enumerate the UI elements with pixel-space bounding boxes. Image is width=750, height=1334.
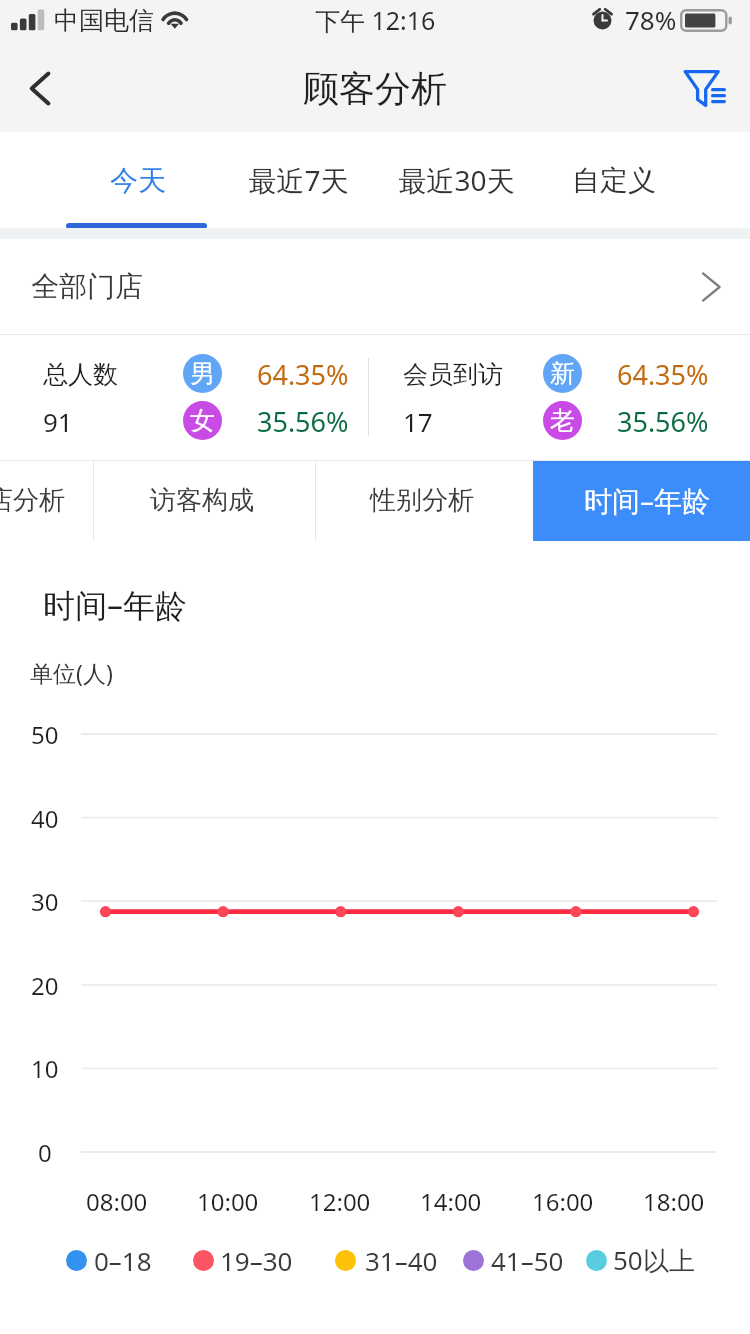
staticText: 时间–年龄	[43, 583, 188, 627]
button[interactable]: 性别分析	[315, 461, 533, 541]
staticText: 10:00	[197, 1185, 259, 1218]
button[interactable]: 最近7天	[218, 132, 378, 228]
staticText: 30	[31, 885, 59, 918]
staticText: 新	[550, 358, 575, 389]
staticText: 20	[31, 969, 59, 1002]
staticText: 10	[31, 1052, 59, 1085]
staticText: 访客构成	[150, 484, 254, 517]
staticText: 64.35%	[617, 356, 709, 393]
staticText: 今天	[110, 163, 166, 198]
staticText: 全部门店	[31, 269, 143, 304]
staticText: 时间–年龄	[584, 481, 711, 519]
staticText: 0–18	[94, 1243, 152, 1278]
staticText: 64.35%	[257, 356, 349, 393]
button[interactable]: Back	[0, 45, 86, 132]
staticText: 老	[550, 405, 575, 436]
staticText: 40	[31, 802, 59, 835]
button[interactable]: Filter	[664, 45, 750, 132]
staticText: 门店分析	[0, 484, 65, 517]
staticText: 50	[31, 718, 59, 751]
staticText: 女	[190, 405, 215, 436]
staticText: 14:00	[420, 1185, 482, 1218]
staticText: 最近7天	[248, 161, 349, 199]
button[interactable]: 自定义	[534, 132, 694, 228]
button[interactable]: 最近30天	[376, 132, 536, 228]
staticText: 下午 12:16	[315, 3, 436, 37]
staticText: 16:00	[532, 1185, 594, 1218]
staticText: 18:00	[643, 1185, 705, 1218]
staticText: 单位(人)	[30, 657, 113, 688]
staticText: 35.56%	[617, 403, 709, 440]
staticText: 41–50	[491, 1243, 564, 1278]
staticText: 31–40	[365, 1243, 438, 1278]
button[interactable]	[0, 461, 92, 541]
staticText: 19–30	[220, 1243, 293, 1278]
button[interactable]: 访客构成	[93, 461, 315, 541]
staticText: 性别分析	[370, 484, 474, 517]
staticText: 12:00	[309, 1185, 371, 1218]
staticText: 男	[190, 358, 215, 389]
staticText: 中国电信	[54, 5, 154, 36]
button[interactable]: 时间–年龄	[533, 461, 750, 541]
staticText: 0	[38, 1136, 52, 1169]
staticText: 78%	[625, 2, 677, 37]
staticText: 顾客分析	[303, 66, 447, 111]
staticText: 17	[403, 404, 433, 439]
staticText: 35.56%	[257, 403, 349, 440]
staticText: 08:00	[86, 1185, 148, 1218]
staticText: 自定义	[572, 163, 656, 198]
button[interactable]: 今天	[58, 132, 218, 228]
staticText: 总人数	[43, 359, 118, 390]
staticText: 50以上	[613, 1242, 695, 1278]
button[interactable]: 全部门店	[0, 239, 750, 334]
staticText: 会员到访	[403, 359, 503, 390]
staticText: 最近30天	[398, 161, 515, 199]
staticText: 91	[43, 404, 73, 439]
